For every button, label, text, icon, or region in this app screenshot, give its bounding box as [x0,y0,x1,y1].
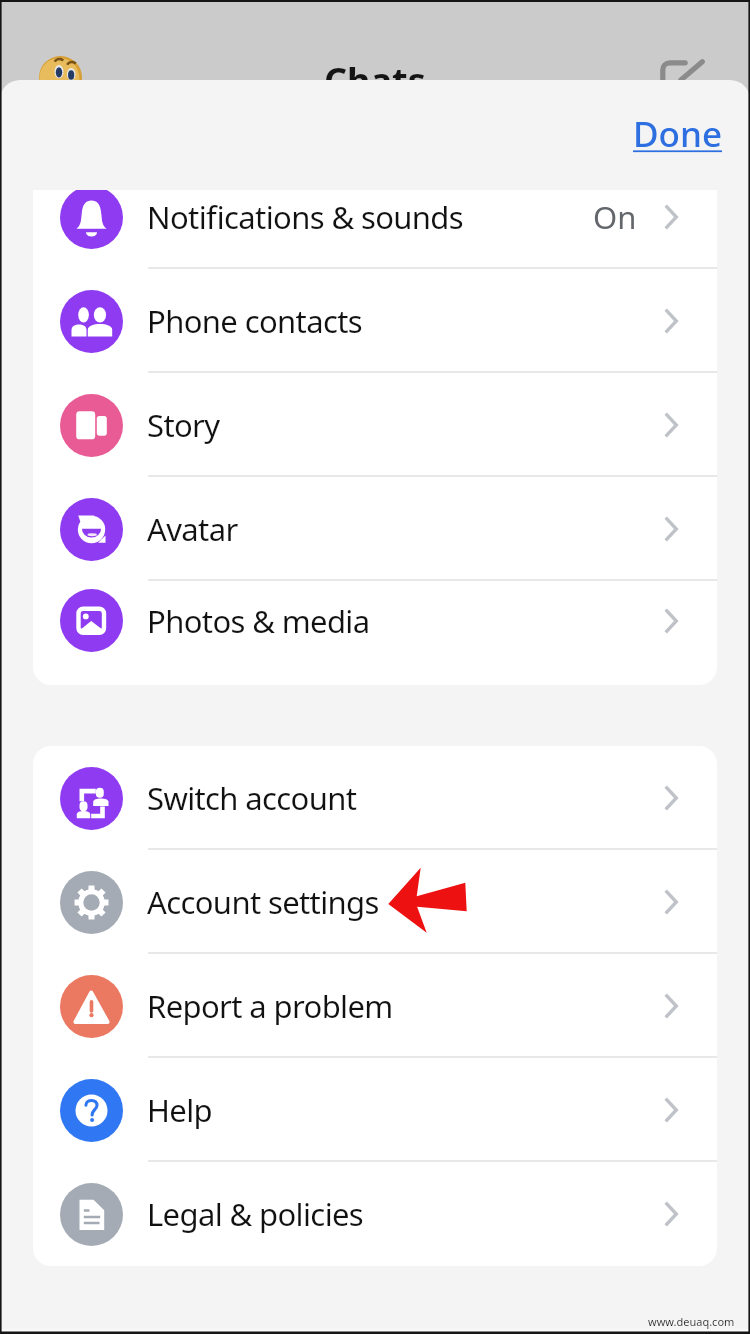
staticText: Done [633,110,723,158]
staticText: Legal & policies [147,1193,364,1235]
staticText: Help [147,1089,213,1131]
button[interactable]: Story [33,373,717,477]
staticText: Report a problem [147,985,393,1027]
button[interactable]: Report a problem [33,954,717,1058]
button[interactable]: Account settings [33,850,717,954]
staticText: On [593,196,637,238]
other: New message [659,58,707,106]
button[interactable]: Help [33,1058,717,1162]
staticText: www.deuaq.com [648,1314,735,1329]
button[interactable]: Legal & policies [33,1162,717,1266]
staticText: Story [147,404,220,446]
button[interactable]: Switch account [33,746,717,850]
staticText: Switch account [147,777,357,819]
button[interactable]: Photos & media [33,581,717,660]
button[interactable]: Done [633,110,723,158]
button[interactable]: Notifications & sounds [33,190,717,269]
staticText: Chats [324,56,426,105]
button[interactable]: Avatar [33,477,717,581]
staticText: Avatar [147,508,238,550]
staticText: Notifications & sounds [147,196,464,238]
staticText: Phone contacts [147,300,362,342]
button[interactable]: Phone contacts [33,269,717,373]
staticText: Account settings [147,881,379,923]
staticText: Photos & media [147,600,370,642]
